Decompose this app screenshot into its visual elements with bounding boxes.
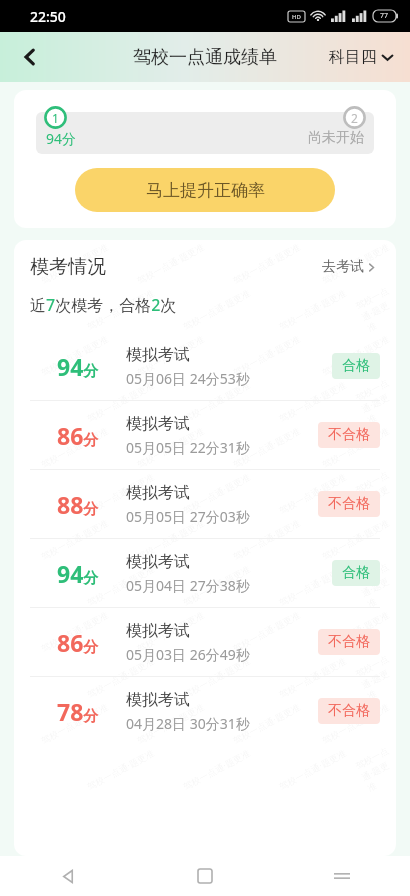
staticText: 模拟考试: [126, 690, 190, 710]
button[interactable]: 78分: [14, 677, 396, 745]
staticText: 驾校一点通·题更准: [39, 424, 110, 470]
staticText: 驾校一点通成绩单: [133, 46, 277, 69]
staticText: 模考情况: [30, 255, 106, 279]
staticText: 驾校一点通·题更准: [231, 332, 302, 378]
staticText: 驾校一点通·题更准: [277, 470, 348, 516]
button[interactable]: 94分: [14, 332, 396, 400]
staticText: 驾校一点通·题更准: [231, 424, 302, 470]
staticText: 驾校一点通·题更准: [181, 562, 252, 608]
button[interactable]: Back: [10, 37, 50, 77]
staticText: 2: [351, 110, 358, 126]
staticText: 马上提升正确率: [146, 180, 265, 201]
staticText: 模拟考试: [126, 345, 190, 365]
staticText: 模拟考试: [126, 414, 190, 434]
staticText: 05月06日 24分53秒: [126, 369, 250, 388]
staticText: 尚未开始: [308, 129, 364, 147]
staticText: 驾校一点通·题更准: [320, 700, 391, 746]
staticText: 驾校一点通·题更准: [353, 561, 396, 610]
staticText: 合格: [342, 564, 370, 582]
staticText: 驾校一点通·题更准: [277, 562, 348, 608]
staticText: 05月03日 26分49秒: [126, 645, 250, 664]
staticText: 驾校一点通·题更准: [85, 654, 156, 700]
staticText: 1: [52, 110, 59, 126]
staticText: 驾校一点通·题更准: [135, 424, 206, 470]
button[interactable]: 86分: [14, 401, 396, 469]
button[interactable]: Back: [0, 856, 136, 896]
staticText: 驾校一点通·题更准: [85, 470, 156, 516]
staticText: 去考试: [322, 258, 364, 276]
staticText: 驾校一点通·题更准: [85, 286, 156, 332]
button[interactable]: 去考试: [318, 254, 380, 280]
staticText: 不合格: [328, 426, 370, 444]
staticText: 77: [380, 11, 389, 21]
staticText: 驾校一点通·题更准: [39, 332, 110, 378]
staticText: 驾校一点通·题更准: [181, 378, 252, 424]
staticText: 94分: [46, 129, 77, 148]
staticText: 驾校一点通·题更准: [231, 700, 302, 746]
staticText: 驾校一点通·题更准: [135, 608, 206, 654]
staticText: 驾校一点通·题更准: [181, 654, 252, 700]
button[interactable]: 马上提升正确率: [75, 168, 335, 212]
staticText: 驾校一点通·题更准: [85, 562, 156, 608]
staticText: 86分: [57, 420, 99, 451]
staticText: 模拟考试: [126, 483, 190, 503]
staticText: 科目四: [329, 47, 377, 67]
button[interactable]: 94分: [14, 539, 396, 607]
button[interactable]: Home: [136, 856, 273, 896]
staticText: 78分: [57, 696, 99, 727]
staticText: 驾校一点通·题更准: [231, 516, 302, 562]
staticText: 05月04日 27分38秒: [126, 576, 250, 595]
button[interactable]: 科目四: [325, 41, 398, 73]
staticText: 驾校一点通·题更准: [135, 332, 206, 378]
staticText: 合格: [342, 357, 370, 375]
button[interactable]: 86分: [14, 608, 396, 676]
staticText: 驾校一点通·题更准: [39, 608, 110, 654]
button[interactable]: Recent apps: [273, 856, 410, 896]
staticText: 驾校一点通·题更准: [135, 516, 206, 562]
staticText: 驾校一点通·题更准: [181, 470, 252, 516]
staticText: 驾校一点通·题更准: [320, 424, 391, 470]
staticText: HD: [292, 13, 301, 21]
staticText: 94分: [57, 558, 99, 589]
staticText: 驾校一点通·题更准: [135, 700, 206, 746]
staticText: 模拟考试: [126, 552, 190, 572]
staticText: 86分: [57, 627, 99, 658]
staticText: 22:50: [30, 7, 66, 26]
staticText: 驾校一点通·题更准: [353, 653, 396, 702]
staticText: 驾校一点通·题更准: [277, 654, 348, 700]
staticText: 驾校一点通·题更准: [320, 332, 391, 378]
staticText: 88分: [57, 489, 99, 520]
staticText: 05月05日 22分31秒: [126, 438, 250, 457]
staticText: 驾校一点通·题更准: [353, 377, 396, 426]
staticText: 不合格: [328, 495, 370, 513]
staticText: 驾校一点通·题更准: [39, 700, 110, 746]
staticText: 驾校一点通·题更准: [85, 378, 156, 424]
staticText: 不合格: [328, 702, 370, 720]
staticText: 04月28日 30分31秒: [126, 714, 250, 733]
staticText: 05月05日 27分03秒: [126, 507, 250, 526]
staticText: 驾校一点通·题更准: [320, 240, 391, 286]
staticText: 驾校一点通·题更准: [277, 378, 348, 424]
staticText: 驾校一点通·题更准: [231, 608, 302, 654]
staticText: 驾校一点通·题更准: [39, 240, 110, 286]
staticText: 不合格: [328, 633, 370, 651]
staticText: 驾校一点通·题更准: [320, 516, 391, 562]
staticText: 94分: [57, 351, 99, 382]
button[interactable]: 88分: [14, 470, 396, 538]
staticText: 驾校一点通·题更准: [353, 469, 396, 518]
staticText: 模拟考试: [126, 621, 190, 641]
staticText: 驾校一点通·题更准: [320, 608, 391, 654]
staticText: 近7次模考，合格2次: [30, 294, 177, 316]
